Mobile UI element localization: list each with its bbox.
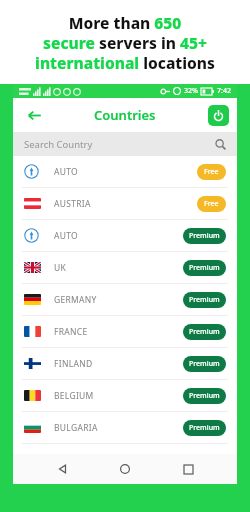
button[interactable]: Premium [189,391,220,401]
button[interactable]: FINLAND [13,348,237,380]
staticText: 32% [184,86,198,96]
button[interactable]: GERMANY [13,284,237,316]
staticText: AUSTRIA [54,198,91,210]
button[interactable]: Premium [189,327,220,337]
button[interactable]: Premium [189,423,220,433]
staticText: More than 650 secure servers in 45+ inte… [35,12,215,73]
staticText: 7:42 [217,86,231,96]
button[interactable]: Search Country [13,132,237,156]
button[interactable]: Back [21,102,47,128]
button[interactable]: BULGARIA [13,412,237,444]
button[interactable]: FRANCE [13,316,237,348]
staticText: FINLAND [54,358,93,370]
staticText: Premium [189,391,220,401]
button[interactable]: UK [13,252,237,284]
button[interactable]: Home [112,456,138,482]
button[interactable]: Power [208,105,229,126]
button[interactable]: Premium [189,295,220,305]
button[interactable]: Back [50,456,76,482]
button[interactable]: AUSTRIA [13,188,237,220]
staticText: Countries [94,106,156,124]
staticText: BELGIUM [54,390,94,402]
button[interactable]: Premium [189,263,220,273]
staticText: UK [54,262,67,274]
staticText: Free [204,167,219,177]
staticText: Premium [189,295,220,305]
button[interactable]: AUTO [13,156,237,188]
staticText: GERMANY [54,294,97,306]
staticText: Premium [189,327,220,337]
button[interactable]: Premium [189,359,220,369]
staticText: BULGARIA [54,422,98,434]
button[interactable]: Free [204,199,219,209]
button[interactable]: Premium [189,231,220,241]
staticText: Premium [189,423,220,433]
staticText: Premium [189,231,220,241]
button[interactable]: Free [204,167,219,177]
button[interactable]: AUTO [13,220,237,252]
button[interactable]: BELGIUM [13,380,237,412]
staticText: Premium [189,263,220,273]
staticText: AUTO [54,230,79,242]
staticText: Premium [189,359,220,369]
staticText: Free [204,199,219,209]
staticText: Search Country [24,138,93,151]
button[interactable]: Recents [175,456,201,482]
staticText: FRANCE [54,326,88,338]
staticText: AUTO [54,166,79,178]
